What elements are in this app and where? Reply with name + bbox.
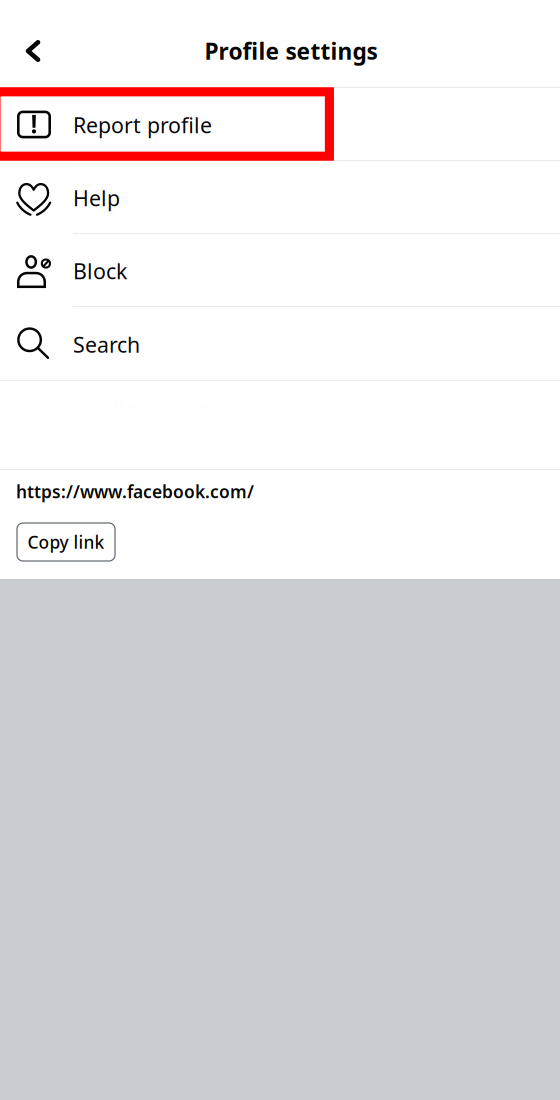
button[interactable]: Copy link <box>17 523 115 561</box>
button[interactable]: Block <box>0 233 560 306</box>
staticText: Help <box>73 184 120 212</box>
staticText: https://www.facebook.com/ <box>16 480 254 503</box>
button[interactable]: Back <box>7 25 59 77</box>
button[interactable]: Help <box>0 160 560 233</box>
staticText: Report profile <box>73 111 212 139</box>
staticText: Search <box>73 330 140 359</box>
staticText: Block <box>73 257 127 285</box>
button[interactable]: Report profile <box>0 87 560 160</box>
staticText: Profile settings <box>204 36 377 66</box>
staticText: Copy link <box>27 530 104 553</box>
button[interactable]: Search <box>0 306 560 380</box>
